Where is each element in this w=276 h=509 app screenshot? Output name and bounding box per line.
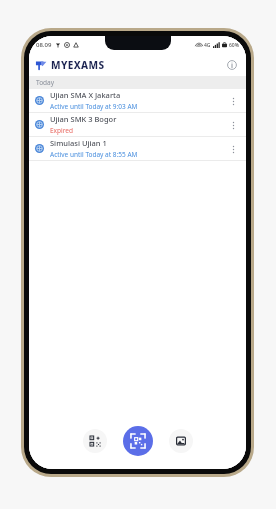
staticText: Today — [36, 78, 55, 87]
button[interactable]: More options — [226, 94, 240, 108]
button[interactable]: Ujian SMK 3 Bogor — [29, 113, 246, 136]
staticText: 08.09 — [36, 41, 52, 49]
staticText: Simulasi Ujian 1 — [50, 138, 107, 148]
staticText: Active until Today at 9:03 AM — [50, 102, 138, 111]
staticText: Expired — [50, 126, 73, 135]
button[interactable]: Create QR code — [83, 429, 107, 453]
button[interactable]: Simulasi Ujian 1 — [29, 137, 246, 160]
staticText: MYEXAMS — [51, 58, 105, 72]
staticText: Active until Today at 8:55 AM — [50, 150, 138, 159]
button[interactable]: Scan QR code — [123, 426, 153, 456]
staticText: Ujian SMA X Jakarta — [50, 90, 121, 100]
staticText: 60% — [229, 42, 239, 49]
staticText: 4G — [204, 42, 211, 49]
staticText: Ujian SMK 3 Bogor — [50, 114, 117, 124]
button[interactable]: Open from gallery — [169, 429, 193, 453]
button[interactable]: Information — [224, 57, 240, 73]
button[interactable]: More options — [226, 118, 240, 132]
button[interactable]: Ujian SMA X Jakarta — [29, 89, 246, 112]
button[interactable]: More options — [226, 142, 240, 156]
